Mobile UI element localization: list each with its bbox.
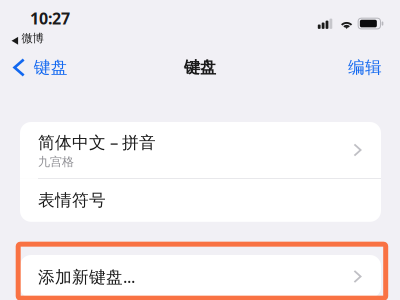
button[interactable]: 表情符号 — [20, 179, 381, 222]
button[interactable]: 微博 — [0, 0, 43, 45]
staticText: 九宫格 — [38, 154, 74, 169]
staticText: 添加新键盘... — [38, 265, 135, 288]
staticText: 编辑 — [348, 57, 382, 78]
button[interactable]: 键盘 — [0, 52, 78, 82]
button[interactable]: 简体中文 – 拼音 — [20, 122, 381, 178]
button[interactable]: 编辑 — [334, 52, 400, 82]
staticText: 微博 — [21, 31, 43, 45]
staticText: 10:27 — [30, 7, 70, 29]
staticText: 键盘 — [184, 57, 216, 78]
staticText: 键盘 — [34, 57, 68, 78]
staticText: 表情符号 — [38, 190, 106, 211]
button[interactable]: 添加新键盘... — [20, 255, 381, 298]
staticText: 简体中文 – 拼音 — [38, 131, 156, 153]
